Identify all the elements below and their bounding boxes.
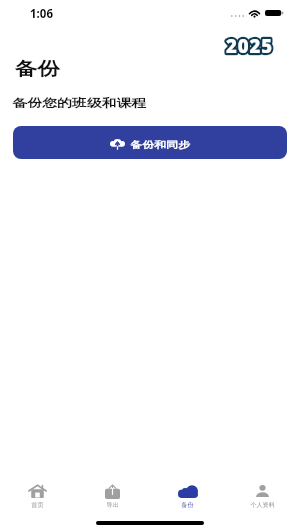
other: Backup	[178, 485, 198, 498]
staticText: 2025	[226, 33, 273, 58]
button[interactable]: Export	[75, 483, 150, 509]
staticText: 备份	[15, 58, 60, 81]
button[interactable]: Backup	[150, 483, 225, 509]
button[interactable]: 备份和同步	[13, 126, 287, 159]
button[interactable]: Home	[0, 483, 75, 509]
staticText: 2025	[226, 33, 273, 58]
staticText: 1:06	[30, 6, 53, 22]
other: Home	[28, 484, 47, 498]
staticText: 个人资料	[250, 501, 275, 509]
staticText: 备份和同步	[130, 139, 190, 151]
staticText: 备份您的班级和课程	[12, 96, 147, 110]
staticText: 备份	[181, 501, 194, 509]
other: Export	[105, 484, 120, 499]
staticText: 导出	[106, 501, 119, 509]
other: Profile	[256, 485, 269, 497]
staticText: 首页	[31, 501, 44, 509]
button[interactable]: Profile	[225, 483, 300, 509]
